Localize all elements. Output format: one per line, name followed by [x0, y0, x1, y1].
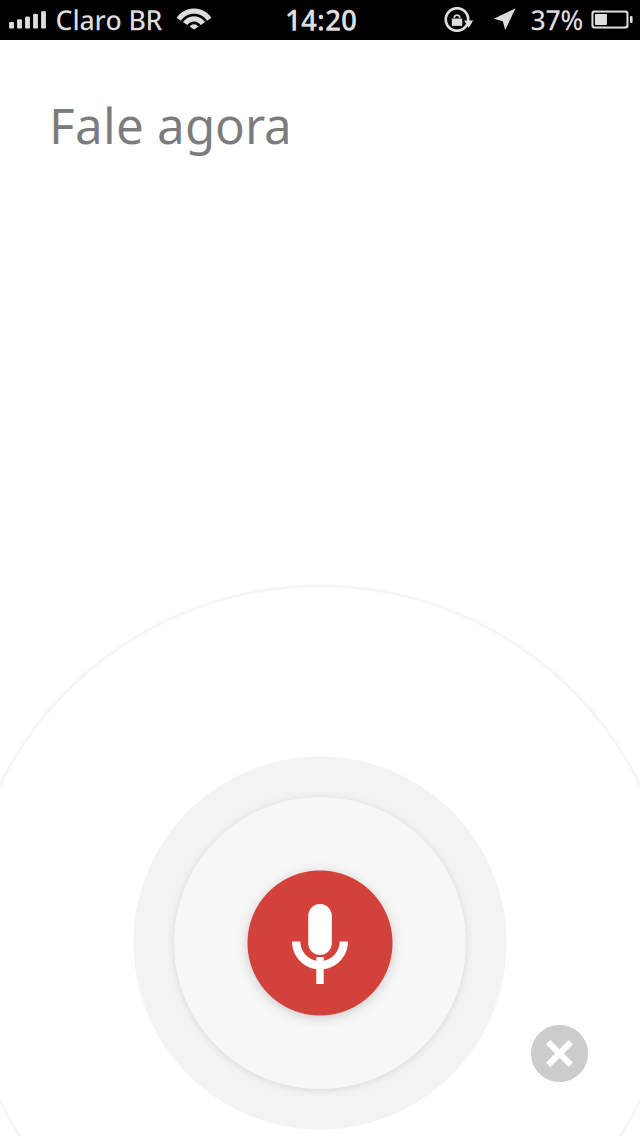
staticText: 14:20: [285, 1, 357, 39]
button[interactable]: Record: [247, 870, 392, 1015]
staticText: Fale agora: [49, 92, 292, 157]
button[interactable]: Close: [531, 1025, 588, 1082]
staticText: 37%: [530, 2, 583, 38]
staticText: Claro BR: [55, 2, 162, 38]
